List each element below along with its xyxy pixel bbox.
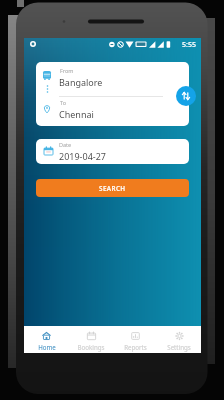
staticText: Reports	[124, 343, 147, 351]
button[interactable]: Settings	[157, 328, 201, 351]
staticText: To	[60, 99, 67, 106]
staticText: SEARCH	[99, 184, 126, 193]
staticText: Home	[38, 343, 56, 351]
button[interactable]: Home	[24, 328, 69, 351]
button[interactable]: From	[36, 62, 189, 126]
staticText: Chennai	[59, 108, 94, 120]
staticText: From	[60, 67, 74, 74]
staticText: Bangalore	[59, 76, 103, 88]
button[interactable]: SEARCH	[36, 179, 189, 197]
button[interactable]: Bookings	[69, 328, 113, 351]
button[interactable]: Date	[36, 139, 189, 164]
staticText: Settings	[167, 343, 191, 351]
staticText: 5:55	[182, 40, 196, 50]
button[interactable]: Reports	[113, 328, 157, 351]
button[interactable]: Swap source and destination	[176, 86, 196, 106]
staticText: Bookings	[77, 343, 105, 351]
staticText: 2019-04-27	[59, 150, 106, 162]
staticText: Date	[59, 141, 72, 148]
